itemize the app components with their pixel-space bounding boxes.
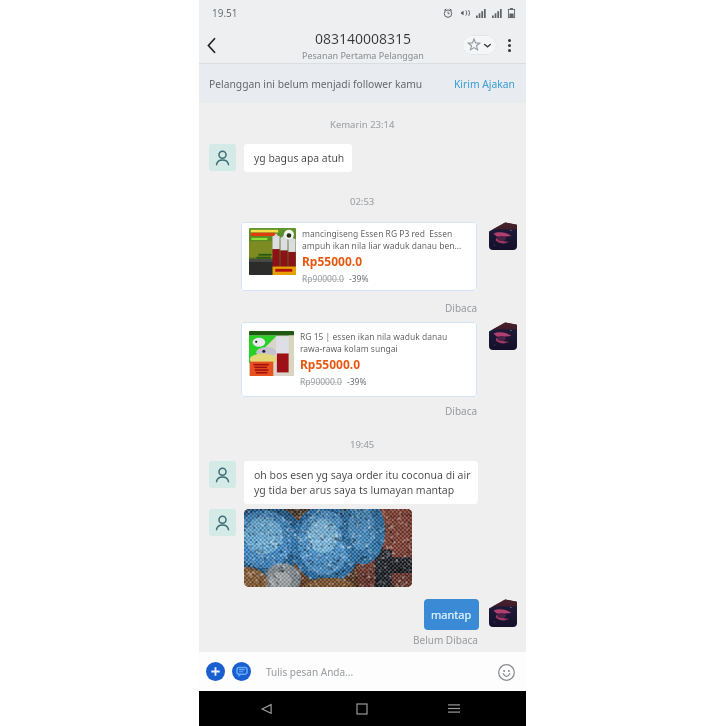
button[interactable]: Emoji [494, 660, 518, 684]
button[interactable]: mancingiseng Essen RG P3 red Essen ampuh… [241, 222, 477, 291]
button[interactable]: RG 15 | essen ikan nila waduk danau rawa… [241, 322, 477, 397]
staticText: oh bos esen yg saya order itu coconua di… [254, 468, 471, 497]
button[interactable]: Add [206, 662, 225, 681]
staticText: Belum Dibaca [413, 633, 478, 647]
staticText: Pesanan Pertama Pelanggan [302, 49, 424, 61]
staticText: Tulis pesan Anda... [266, 665, 494, 679]
button[interactable]: Home [341, 691, 383, 726]
staticText: yg bagus apa atuh [254, 151, 345, 165]
staticText: Dibaca [445, 301, 478, 315]
staticText: RG 15 | essen ikan nila waduk danau rawa… [300, 331, 469, 355]
button[interactable]: Recent apps [433, 691, 475, 726]
staticText: Rp90000.0 [300, 376, 342, 388]
staticText: 19:45 [350, 438, 375, 451]
staticText: Dibaca [445, 404, 478, 418]
staticText: mancingiseng Essen RG P3 red Essen ampuh… [302, 228, 469, 252]
staticText: Rp55000.0 [300, 356, 361, 372]
button[interactable]: Back [199, 32, 225, 58]
staticText: 19.51 [212, 6, 238, 20]
button[interactable]: Kirim Ajakan [452, 71, 517, 97]
staticText: 02:53 [350, 195, 375, 208]
button[interactable]: Quick reply [232, 662, 251, 681]
staticText: Kirim Ajakan [454, 77, 515, 91]
staticText: -39% [349, 273, 369, 285]
staticText: -39% [347, 376, 367, 388]
button[interactable]: mantap [424, 599, 479, 630]
button[interactable]: More options [497, 33, 521, 57]
staticText: Rp90000.0 [302, 273, 344, 285]
staticText: Rp55000.0 [302, 253, 363, 269]
button[interactable]: oh bos esen yg saya order itu coconua di… [244, 461, 478, 504]
staticText: Kemarin 23:14 [330, 118, 395, 131]
button[interactable] [244, 509, 412, 587]
button[interactable]: Favorite [462, 35, 497, 55]
button[interactable]: Back [245, 691, 287, 726]
staticText: mantap [431, 607, 472, 622]
staticText: 083140008315 [315, 29, 412, 48]
button[interactable]: yg bagus apa atuh [244, 144, 352, 172]
staticText: Pelanggan ini belum menjadi follower kam… [209, 77, 423, 91]
